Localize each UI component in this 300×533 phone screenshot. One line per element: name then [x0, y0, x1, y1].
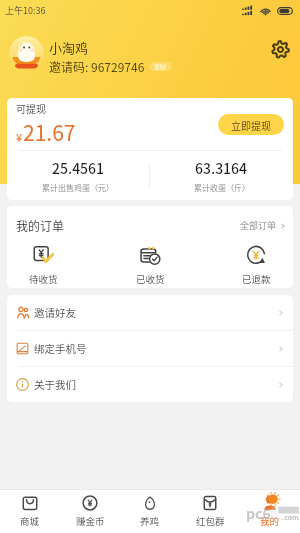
staticText: 绑定手机号 — [34, 341, 87, 356]
staticText: 立即提现 — [231, 118, 271, 132]
button[interactable]: 我的 — [240, 490, 300, 533]
staticText: 邀请好友 — [34, 305, 76, 320]
button[interactable]: Settings — [265, 34, 295, 64]
staticText: 已收货 — [136, 272, 165, 286]
button[interactable]: 商城 — [0, 490, 60, 533]
staticText: 累计出售鸡蛋（元） — [42, 182, 114, 194]
button[interactable]: 邀请好友 — [7, 295, 293, 330]
button[interactable]: 已退款 — [242, 246, 271, 286]
button[interactable]: 关于我们 — [7, 367, 293, 402]
button[interactable]: 63.3164 — [150, 158, 293, 194]
button[interactable]: 25.4561 — [7, 158, 149, 194]
staticText: 小淘鸡 — [49, 38, 89, 57]
staticText: 关于我们 — [34, 377, 76, 392]
staticText: 已退款 — [242, 272, 271, 286]
button[interactable]: 赚金币 — [60, 490, 120, 533]
button[interactable]: 立即提现 — [218, 114, 284, 135]
staticText: 全部订单 — [240, 219, 277, 232]
staticText: 待收货 — [29, 272, 58, 286]
staticText: 可提现 — [16, 101, 46, 115]
staticText: 我的 — [260, 514, 280, 528]
staticText: 21.67 — [23, 117, 76, 147]
staticText: 商城 — [20, 514, 40, 528]
staticText: .com — [282, 512, 299, 522]
button[interactable]: 红包群 — [180, 490, 240, 533]
staticText: 邀请码: 96729746 — [49, 58, 145, 75]
staticText: 复制 — [154, 62, 167, 71]
staticText: 我的订单 — [16, 217, 65, 234]
staticText: 25.4561 — [52, 158, 105, 178]
staticText: 上午10:36 — [5, 4, 46, 17]
button[interactable]: 待收货 — [29, 246, 58, 286]
staticText: 养鸡 — [140, 514, 160, 528]
button[interactable]: 绑定手机号 — [7, 331, 293, 366]
button[interactable]: 已收货 — [136, 246, 165, 286]
staticText: 赚金币 — [76, 514, 105, 528]
button[interactable]: 养鸡 — [120, 490, 180, 533]
staticText: pc6 — [246, 503, 271, 523]
button[interactable]: 全部订单 — [240, 219, 286, 232]
staticText: 63.3164 — [195, 158, 248, 178]
button[interactable]: 复制 — [149, 62, 172, 71]
button[interactable] — [9, 36, 44, 71]
staticText: ¥ — [16, 129, 23, 145]
staticText: 累计收蛋（斤） — [194, 182, 250, 194]
staticText: 红包群 — [196, 514, 225, 528]
